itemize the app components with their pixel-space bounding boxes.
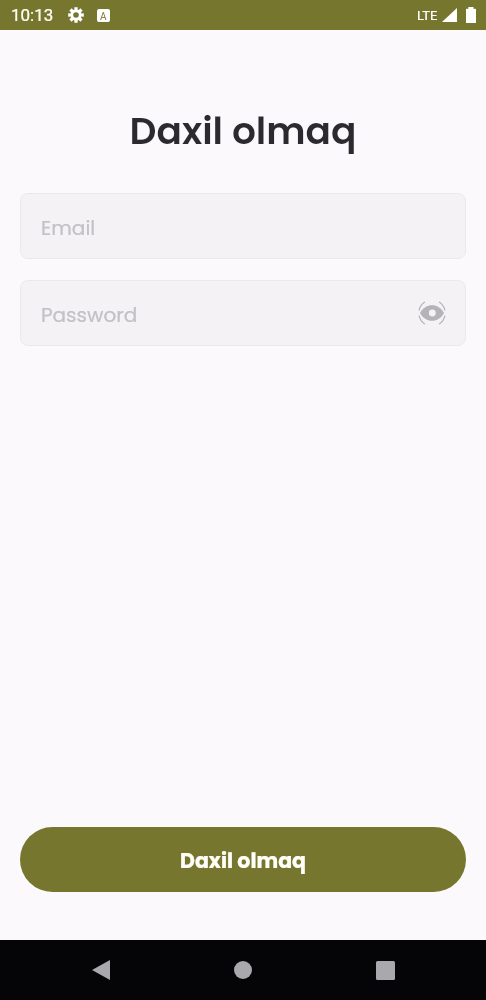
staticText: 10:13 (11, 5, 54, 25)
staticText: Daxil olmaq (0, 105, 486, 158)
staticText: Daxil olmaq (180, 846, 306, 875)
button[interactable]: Recent apps (361, 946, 409, 994)
button[interactable]: Password (20, 280, 466, 346)
button[interactable]: Daxil olmaq (20, 827, 466, 892)
button[interactable]: Home (219, 946, 267, 994)
button[interactable]: Email (20, 193, 466, 259)
button[interactable]: Show password (415, 296, 449, 330)
staticText: Password (41, 301, 138, 329)
staticText: A (100, 11, 107, 22)
staticText: LTE (417, 8, 438, 23)
button[interactable]: Back (77, 946, 125, 994)
staticText: Email (41, 214, 96, 242)
